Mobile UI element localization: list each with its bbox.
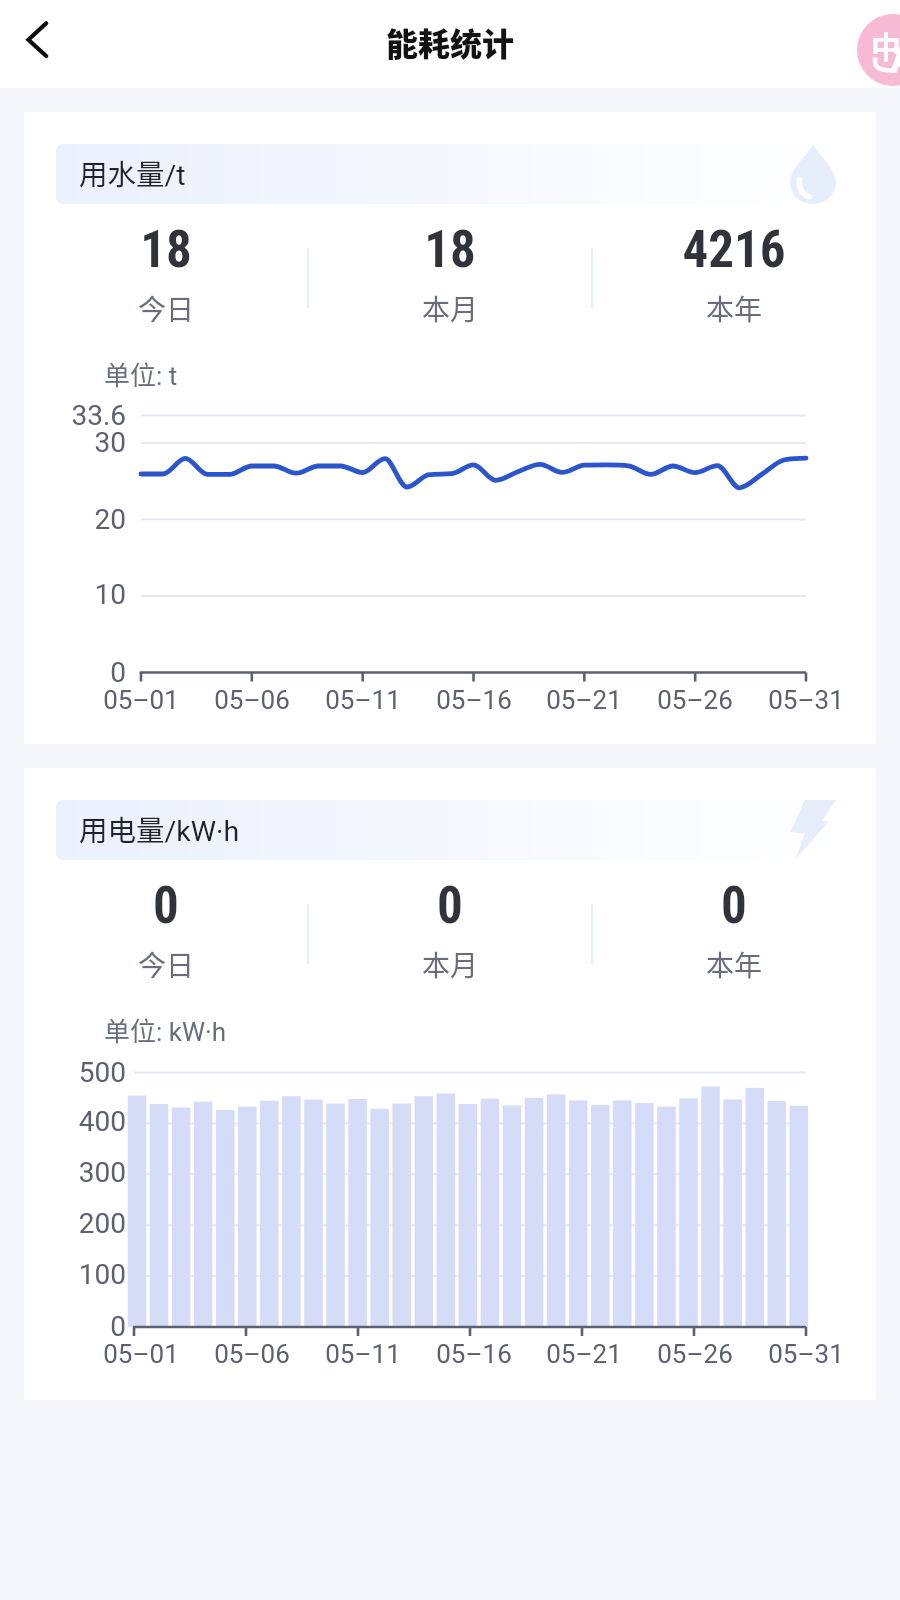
staticText: 18	[24, 220, 308, 280]
staticText: 05–26	[635, 685, 755, 715]
button[interactable]: 0	[308, 870, 592, 988]
staticText: 500	[24, 1056, 126, 1089]
staticText: 中	[871, 23, 900, 66]
button[interactable]	[56, 800, 843, 860]
button[interactable]: Back	[5, 7, 69, 71]
staticText: 4216	[592, 220, 876, 280]
staticText: 0	[592, 876, 876, 936]
staticText: 30	[24, 426, 126, 459]
staticText: 本月	[308, 944, 592, 985]
staticText: 本月	[308, 288, 592, 329]
staticText: 本年	[592, 288, 876, 329]
staticText: 20	[24, 503, 126, 536]
button[interactable]: 4216	[592, 214, 876, 332]
staticText: 05–06	[192, 1339, 312, 1369]
staticText: 05–31	[746, 1339, 866, 1369]
staticText: 100	[24, 1258, 126, 1291]
button[interactable]: 0	[24, 870, 308, 988]
staticText: 能耗统计	[386, 19, 515, 65]
staticText: 0	[24, 876, 308, 936]
staticText: 300	[24, 1156, 126, 1189]
staticText: 33.6	[24, 399, 126, 432]
staticText: 05–06	[192, 685, 312, 715]
staticText: 0	[308, 876, 592, 936]
staticText: 用水量/t	[79, 152, 186, 193]
staticText: 0	[24, 656, 126, 689]
staticText: 05–16	[414, 685, 534, 715]
staticText: 05–01	[81, 685, 201, 715]
staticText: 05–21	[524, 685, 644, 715]
button[interactable]: 0	[592, 870, 876, 988]
staticText: 0	[24, 1310, 126, 1343]
staticText: 单位: kW·h	[104, 1011, 227, 1049]
button[interactable]	[56, 144, 843, 204]
button[interactable]: 18	[24, 214, 308, 332]
button[interactable]: 18	[308, 214, 592, 332]
staticText: 05–31	[746, 685, 866, 715]
staticText: 今日	[24, 944, 308, 985]
staticText: 05–11	[303, 685, 423, 715]
staticText: 05–26	[635, 1339, 755, 1369]
staticText: 200	[24, 1207, 126, 1240]
staticText: 05–21	[524, 1339, 644, 1369]
staticText: 10	[24, 578, 126, 611]
staticText: 400	[24, 1105, 126, 1138]
staticText: 用电量/kW·h	[79, 808, 240, 849]
staticText: 今日	[24, 288, 308, 329]
staticText: 05–01	[81, 1339, 201, 1369]
button[interactable]: Switch language	[857, 14, 900, 86]
staticText: 本年	[592, 944, 876, 985]
staticText: 单位: t	[104, 355, 178, 393]
staticText: 05–11	[303, 1339, 423, 1369]
staticText: A	[890, 36, 900, 83]
staticText: 18	[308, 220, 592, 280]
staticText: 05–16	[414, 1339, 534, 1369]
